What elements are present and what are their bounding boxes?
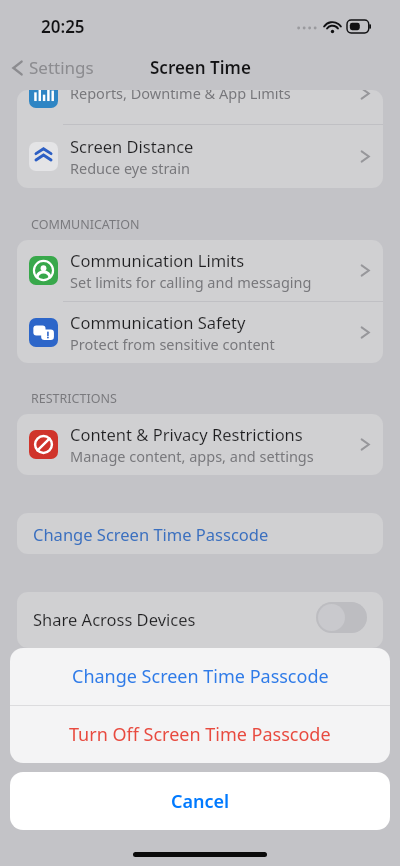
- button[interactable]: Content & Privacy Restrictions: [17, 414, 383, 475]
- button[interactable]: Cancel: [10, 772, 390, 830]
- staticText: Share Across Devices: [33, 608, 196, 630]
- button[interactable]: Communication Safety: [17, 302, 383, 363]
- staticText: Manage content, apps, and settings: [70, 446, 314, 466]
- button[interactable]: Change Screen Time Passcode: [17, 513, 383, 554]
- button[interactable]: Turn Off Screen Time Passcode: [10, 706, 390, 763]
- staticText: Turn Off Screen Time Passcode: [69, 722, 331, 747]
- staticText: RESTRICTIONS: [31, 390, 117, 407]
- staticText: Protect from sensitive content: [70, 334, 275, 354]
- staticText: COMMUNICATION: [31, 216, 140, 233]
- staticText: Communication Limits: [70, 249, 245, 271]
- staticText: Reduce eye strain: [70, 158, 190, 178]
- staticText: Reports, Downtime & App Limits: [70, 90, 291, 103]
- staticText: Set limits for calling and messaging: [70, 272, 312, 292]
- button[interactable]: Share Across Devices: [17, 592, 383, 648]
- staticText: Screen Distance: [70, 135, 194, 157]
- staticText: Change Screen Time Passcode: [33, 523, 269, 545]
- staticText: Settings: [29, 56, 94, 79]
- staticText: Content & Privacy Restrictions: [70, 423, 303, 445]
- button[interactable]: Change Screen Time Passcode: [10, 648, 390, 705]
- staticText: Change Screen Time Passcode: [72, 664, 329, 689]
- button[interactable]: Communication Limits: [17, 240, 383, 301]
- button[interactable]: Back to Settings: [8, 52, 98, 83]
- button[interactable]: Share Across Devices toggle: [316, 602, 367, 633]
- staticText: 20:25: [41, 15, 85, 38]
- staticText: Cancel: [171, 789, 230, 814]
- staticText: Screen Time: [150, 56, 251, 79]
- staticText: Communication Safety: [70, 311, 246, 333]
- button[interactable]: Screen Distance: [17, 125, 383, 188]
